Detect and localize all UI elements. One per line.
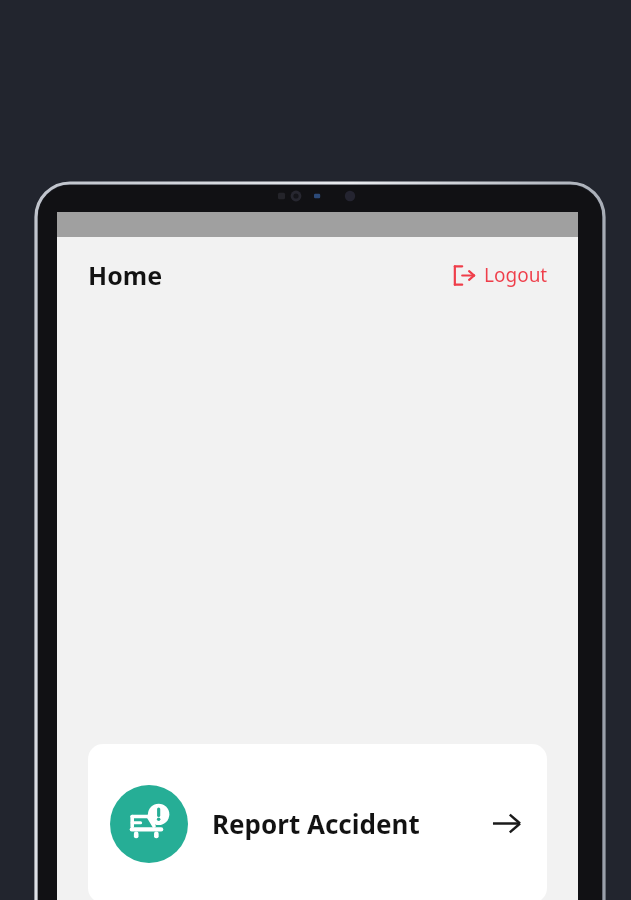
button[interactable]: Logout <box>451 256 550 294</box>
staticText: Report Accident <box>212 806 420 841</box>
other: Report accident <box>128 803 170 845</box>
button[interactable]: Report accident <box>88 744 547 900</box>
other: Open Report Accident <box>490 807 523 840</box>
staticText: Logout <box>484 262 548 288</box>
staticText: Home <box>88 258 163 292</box>
other: Logout <box>453 264 476 287</box>
